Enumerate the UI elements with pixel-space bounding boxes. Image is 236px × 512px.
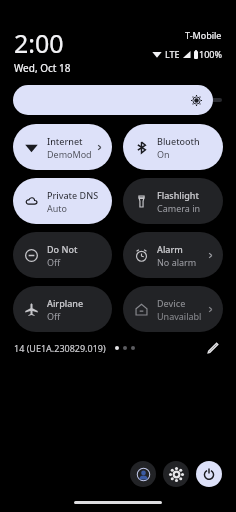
staticText: T-Mobile	[185, 29, 222, 41]
staticText: DemoMode	[47, 148, 95, 160]
staticText: Internet	[47, 135, 83, 147]
staticText: Flashlight	[157, 189, 199, 201]
button[interactable]: Do Not Disturb	[13, 232, 112, 278]
staticText: On	[157, 148, 170, 160]
button[interactable]: Alarm	[123, 232, 223, 278]
button[interactable]: Device controls	[123, 286, 223, 332]
button[interactable]: Private DNS	[13, 178, 112, 224]
staticText: Auto	[47, 202, 68, 214]
staticText: Alarm	[157, 243, 183, 255]
button[interactable]: Settings	[163, 461, 189, 487]
button[interactable]: Edit tiles	[204, 339, 222, 357]
staticText: LTE	[165, 48, 180, 60]
staticText: Device controls	[157, 297, 206, 309]
staticText: Do Not Disturb	[47, 243, 106, 255]
staticText: Airplane mode	[47, 297, 106, 309]
staticText: 2:00	[14, 26, 64, 60]
button[interactable]: Power	[196, 461, 222, 487]
button[interactable]: Brightness	[13, 85, 213, 115]
staticText: No alarm set	[157, 256, 206, 268]
button[interactable]: Flashlight	[123, 178, 223, 224]
staticText: Off	[47, 256, 61, 268]
button[interactable]: Bluetooth	[123, 124, 223, 170]
staticText: Private DNS	[47, 189, 99, 201]
button[interactable]: Internet	[13, 124, 112, 170]
staticText: Bluetooth	[157, 135, 200, 147]
staticText: Off	[47, 310, 61, 322]
button[interactable]: Airplane mode	[13, 286, 112, 332]
staticText: Wed, Oct 18	[14, 61, 71, 75]
staticText: Unavailable	[157, 310, 206, 322]
staticText: Camera in use	[157, 202, 217, 214]
staticText: 100%	[199, 48, 222, 60]
staticText: 14 (UE1A.230829.019)	[14, 342, 106, 354]
button[interactable]: User	[130, 461, 156, 487]
